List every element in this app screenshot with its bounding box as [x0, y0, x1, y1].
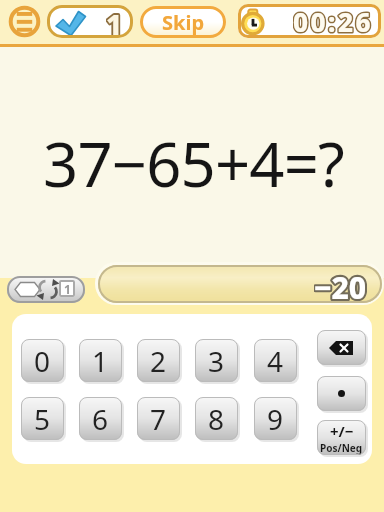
button[interactable]: 9	[254, 397, 297, 440]
staticText: 7	[150, 400, 167, 438]
button[interactable]: 3	[195, 339, 238, 382]
staticText: 4	[267, 342, 284, 380]
button[interactable]: 0	[21, 339, 64, 382]
staticText: 0	[34, 342, 51, 380]
staticText: 8	[208, 400, 225, 438]
staticText: 00:26	[293, 4, 374, 38]
button[interactable]: 7	[137, 397, 180, 440]
button[interactable]: 5	[21, 397, 64, 440]
staticText: 9	[267, 400, 284, 438]
button[interactable]	[317, 330, 366, 365]
button[interactable]: 1	[79, 339, 122, 382]
staticText: −20	[314, 267, 367, 305]
staticText: Skip	[162, 9, 205, 36]
staticText: 2	[150, 342, 167, 380]
staticText: 1	[92, 342, 109, 380]
staticText: 6	[92, 400, 109, 438]
staticText: 5	[34, 400, 51, 438]
button[interactable]: +/−	[317, 420, 366, 455]
button[interactable]	[6, 3, 43, 40]
staticText: 1	[106, 5, 123, 38]
button[interactable]: 8	[195, 397, 238, 440]
staticText: 1	[64, 281, 71, 297]
button[interactable]: 2	[137, 339, 180, 382]
staticText: −20	[314, 267, 367, 305]
button[interactable]: Skip	[140, 6, 226, 38]
staticText: 3	[208, 342, 225, 380]
staticText: 37−65+4=?	[43, 121, 344, 205]
staticText: +/−	[330, 421, 354, 441]
staticText: 00:26	[293, 4, 374, 38]
button[interactable]: 1	[7, 276, 85, 303]
button[interactable]: 4	[254, 339, 297, 382]
staticText: 1	[106, 5, 123, 38]
staticText: Pos/Neg	[320, 441, 363, 455]
button[interactable]	[317, 376, 366, 411]
button[interactable]: 6	[79, 397, 122, 440]
